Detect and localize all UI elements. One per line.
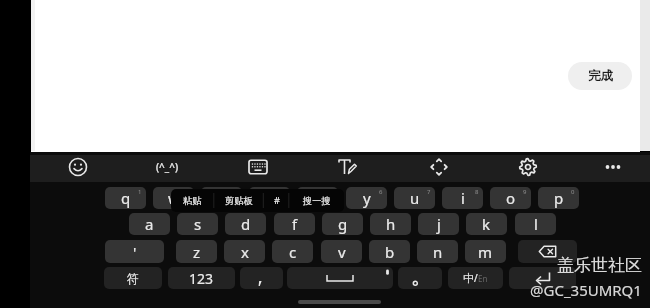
staticText: 符 [127, 271, 139, 286]
button[interactable]: Handwriting [333, 153, 361, 181]
staticText: 4 [282, 188, 286, 196]
staticText: 5 [330, 188, 334, 196]
button[interactable]: 粘贴 [171, 189, 214, 212]
staticText: h [386, 214, 396, 234]
staticText: En [478, 273, 488, 284]
button[interactable]: 符 [104, 267, 162, 289]
staticText: l [534, 214, 538, 234]
staticText: (^_^) [156, 160, 179, 174]
staticText: k [482, 214, 491, 234]
button[interactable]: Period [398, 267, 442, 289]
button[interactable]: Backspace [518, 240, 577, 263]
button[interactable]: g [322, 213, 363, 235]
button[interactable]: a [129, 213, 170, 235]
button[interactable]: x [224, 240, 265, 263]
button[interactable]: 中 [448, 267, 503, 289]
staticText: d [241, 214, 251, 234]
button[interactable]: Space [287, 267, 393, 289]
staticText: 6 [379, 188, 383, 196]
button[interactable]: More [599, 153, 627, 181]
staticText: 搜一搜 [303, 195, 331, 207]
button[interactable]: Enter [509, 267, 576, 289]
staticText: b [385, 242, 395, 262]
staticText: @GC_35UMRQ1 [530, 280, 642, 300]
staticText: m [478, 242, 493, 262]
staticText: y [363, 188, 371, 208]
staticText: n [433, 242, 443, 262]
button[interactable]: Keyboard layout [244, 153, 272, 181]
staticText: z [193, 242, 201, 262]
staticText: ' [133, 242, 137, 262]
button[interactable]: Emoji [64, 153, 92, 181]
button[interactable]: ' [105, 240, 164, 263]
button[interactable]: o [490, 187, 531, 209]
staticText: 2 [186, 188, 190, 196]
button[interactable]: d [225, 213, 266, 235]
button[interactable]: n [417, 240, 458, 263]
button[interactable]: r [249, 187, 290, 209]
staticText: j [437, 214, 441, 234]
staticText: 完成 [588, 68, 613, 84]
button[interactable]: y [346, 187, 387, 209]
button[interactable]: e [201, 187, 242, 209]
staticText: 8 [475, 188, 479, 196]
button[interactable]: m [465, 240, 506, 263]
button[interactable]: u [394, 187, 435, 209]
button[interactable]: 完成 [568, 62, 632, 90]
button[interactable]: f [274, 213, 315, 235]
button[interactable]: w [153, 187, 194, 209]
button[interactable]: z [176, 240, 217, 263]
staticText: q [121, 188, 131, 208]
button[interactable]: Settings [514, 153, 542, 181]
button[interactable]: l [515, 213, 556, 235]
button[interactable]: c [272, 240, 313, 263]
staticText: # [274, 194, 280, 207]
staticText: r [266, 188, 273, 208]
staticText: s [194, 214, 202, 234]
staticText: w [168, 188, 180, 208]
staticText: 粘贴 [183, 195, 202, 207]
staticText: o [506, 188, 516, 208]
button[interactable]: 剪贴板 [214, 189, 264, 212]
staticText: t [315, 188, 321, 208]
staticText: x [241, 242, 249, 262]
staticText: 1 [138, 188, 142, 196]
staticText: 3 [234, 188, 238, 196]
button[interactable]: h [370, 213, 411, 235]
button[interactable]: Cursor control [425, 153, 453, 181]
button[interactable]: b [369, 240, 410, 263]
button[interactable]: Comma [240, 267, 283, 289]
button[interactable]: p [538, 187, 579, 209]
staticText: c [289, 242, 297, 262]
button[interactable]: s [177, 213, 218, 235]
button[interactable]: j [418, 213, 459, 235]
button[interactable]: i [442, 187, 483, 209]
staticText: u [410, 188, 420, 208]
button[interactable]: k [466, 213, 507, 235]
staticText: 7 [427, 188, 431, 196]
staticText: 中 [463, 271, 474, 285]
staticText: 盖乐世社区 [557, 255, 642, 276]
button[interactable]: t [297, 187, 338, 209]
staticText: / [474, 271, 478, 285]
staticText: 9 [523, 188, 527, 196]
button[interactable]: Kaomoji [151, 153, 183, 181]
staticText: 剪贴板 [225, 195, 253, 207]
button[interactable]: 123 [168, 267, 235, 289]
staticText: 123 [189, 269, 214, 288]
staticText: v [338, 242, 346, 262]
button[interactable]: 搜一搜 [290, 189, 344, 212]
staticText: f [292, 214, 298, 234]
button[interactable]: v [321, 240, 362, 263]
button[interactable]: # [264, 189, 290, 212]
button[interactable]: q [105, 187, 146, 209]
staticText: a [145, 214, 154, 234]
staticText: 0 [571, 188, 575, 196]
staticText: e [217, 188, 226, 208]
staticText: g [338, 214, 348, 234]
staticText: i [461, 188, 465, 208]
staticText: p [554, 188, 564, 208]
